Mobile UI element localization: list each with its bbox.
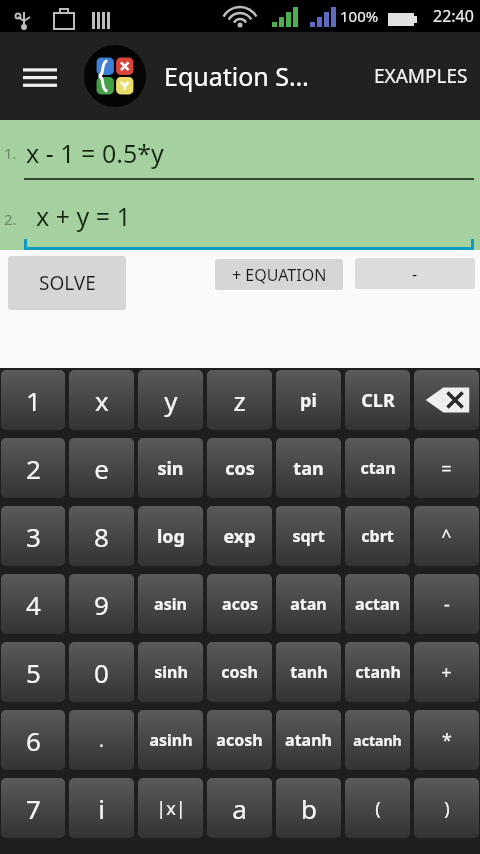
- button[interactable]: x: [69, 370, 134, 430]
- button[interactable]: sqrt: [276, 506, 341, 566]
- button[interactable]: tan: [276, 438, 341, 498]
- button[interactable]: cos: [207, 438, 272, 498]
- staticText: +: [441, 660, 452, 685]
- staticText: a: [232, 791, 247, 826]
- staticText: atan: [290, 593, 327, 615]
- staticText: cbrt: [361, 525, 394, 547]
- button[interactable]: Backspace: [414, 370, 479, 430]
- button[interactable]: EXAMPLES: [362, 32, 480, 120]
- button[interactable]: 6: [1, 710, 65, 770]
- button[interactable]: 9: [69, 574, 134, 634]
- staticText: 3: [26, 519, 41, 554]
- staticText: 22:40: [433, 5, 474, 27]
- staticText: 1: [26, 383, 41, 418]
- button[interactable]: SOLVE: [8, 256, 126, 310]
- staticText: x: [95, 383, 109, 418]
- button[interactable]: *: [414, 710, 479, 770]
- button[interactable]: b: [276, 778, 341, 838]
- staticText: -: [412, 263, 418, 285]
- button[interactable]: +: [414, 642, 479, 702]
- staticText: 1.: [4, 143, 17, 163]
- button[interactable]: 2: [1, 438, 65, 498]
- button[interactable]: CLR: [345, 370, 410, 430]
- staticText: ctanh: [355, 661, 401, 683]
- button[interactable]: -: [355, 258, 475, 289]
- button[interactable]: .: [69, 710, 134, 770]
- staticText: SOLVE: [39, 270, 96, 296]
- button[interactable]: asin: [138, 574, 203, 634]
- staticText: 6: [26, 723, 41, 758]
- button[interactable]: 8: [69, 506, 134, 566]
- other: Backspace: [414, 370, 479, 430]
- button[interactable]: 4: [1, 574, 65, 634]
- button[interactable]: |x|: [138, 778, 203, 838]
- button[interactable]: cosh: [207, 642, 272, 702]
- button[interactable]: z: [207, 370, 272, 430]
- button[interactable]: sin: [138, 438, 203, 498]
- staticText: |x|: [156, 796, 186, 821]
- button[interactable]: -: [414, 574, 479, 634]
- staticText: b: [301, 791, 317, 826]
- staticText: CLR: [361, 388, 395, 413]
- staticText: 0: [94, 655, 109, 690]
- button[interactable]: actanh: [345, 710, 410, 770]
- button[interactable]: ): [414, 778, 479, 838]
- staticText: x + y = 1: [36, 199, 131, 233]
- button[interactable]: + EQUATION: [215, 259, 343, 290]
- button[interactable]: a: [207, 778, 272, 838]
- button[interactable]: tanh: [276, 642, 341, 702]
- button[interactable]: ctanh: [345, 642, 410, 702]
- button[interactable]: asinh: [138, 710, 203, 770]
- button[interactable]: atanh: [276, 710, 341, 770]
- button[interactable]: ^: [414, 506, 479, 566]
- staticText: Equation S…: [164, 59, 309, 93]
- button[interactable]: i: [69, 778, 134, 838]
- button[interactable]: pi: [276, 370, 341, 430]
- staticText: .: [99, 728, 104, 753]
- staticText: pi: [300, 388, 317, 413]
- button[interactable]: actan: [345, 574, 410, 634]
- button[interactable]: y: [138, 370, 203, 430]
- button[interactable]: 1: [1, 370, 65, 430]
- button[interactable]: exp: [207, 506, 272, 566]
- staticText: 100%: [340, 6, 379, 26]
- staticText: -: [444, 592, 450, 617]
- staticText: (: [375, 796, 381, 821]
- staticText: EXAMPLES: [374, 63, 468, 89]
- staticText: sinh: [154, 661, 188, 683]
- staticText: acos: [222, 593, 258, 615]
- staticText: sqrt: [292, 525, 325, 547]
- button[interactable]: ctan: [345, 438, 410, 498]
- staticText: cos: [225, 456, 255, 481]
- staticText: 7: [26, 791, 41, 826]
- staticText: tan: [293, 456, 324, 481]
- staticText: z: [233, 383, 246, 418]
- button[interactable]: 0: [69, 642, 134, 702]
- button[interactable]: log: [138, 506, 203, 566]
- staticText: 8: [94, 519, 109, 554]
- button[interactable]: 7: [1, 778, 65, 838]
- staticText: 4: [26, 587, 41, 622]
- staticText: actanh: [353, 731, 402, 750]
- staticText: exp: [223, 524, 256, 549]
- button[interactable]: e: [69, 438, 134, 498]
- staticText: log: [157, 524, 185, 549]
- button[interactable]: 5: [1, 642, 65, 702]
- staticText: y: [164, 383, 178, 418]
- button[interactable]: acosh: [207, 710, 272, 770]
- button[interactable]: 3: [1, 506, 65, 566]
- staticText: ^: [441, 524, 452, 549]
- button[interactable]: Open navigation menu: [14, 50, 66, 102]
- button[interactable]: =: [414, 438, 479, 498]
- staticText: tanh: [290, 661, 328, 683]
- staticText: asin: [154, 593, 187, 615]
- button[interactable]: (: [345, 778, 410, 838]
- staticText: ): [444, 796, 450, 821]
- staticText: =: [441, 456, 452, 481]
- button[interactable]: cbrt: [345, 506, 410, 566]
- staticText: + EQUATION: [232, 264, 327, 286]
- button[interactable]: atan: [276, 574, 341, 634]
- button[interactable]: sinh: [138, 642, 203, 702]
- button[interactable]: acos: [207, 574, 272, 634]
- staticText: *: [442, 728, 452, 753]
